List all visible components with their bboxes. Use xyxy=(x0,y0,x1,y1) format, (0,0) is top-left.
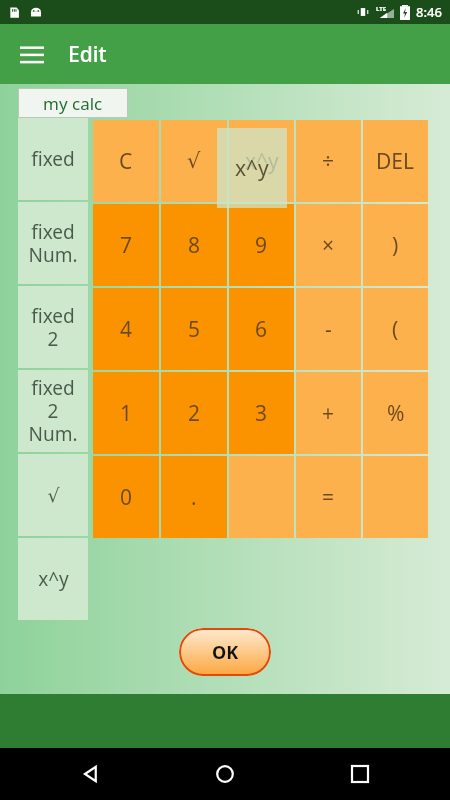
staticText: 8:46 xyxy=(416,3,442,21)
staticText: 3 xyxy=(255,399,268,428)
button[interactable]: + xyxy=(296,372,361,454)
staticText: fixed 2 Num. xyxy=(28,375,78,447)
button[interactable]: - xyxy=(296,288,361,370)
button[interactable]: 5 xyxy=(161,288,227,370)
button[interactable]: ÷ xyxy=(296,120,361,202)
staticText: DEL xyxy=(376,147,415,176)
staticText: % xyxy=(387,399,405,428)
button[interactable]: = xyxy=(296,456,361,538)
staticText: my calc xyxy=(43,92,103,115)
staticText: + xyxy=(322,399,335,428)
staticText: 5 xyxy=(188,315,201,344)
button[interactable]: √ xyxy=(161,120,227,202)
button[interactable]: x^y xyxy=(229,120,294,202)
button[interactable]: DEL xyxy=(363,120,428,202)
button[interactable]: ) xyxy=(363,204,428,286)
button[interactable]: Home xyxy=(205,754,245,794)
button[interactable]: 9 xyxy=(229,204,294,286)
staticText: - xyxy=(325,315,332,344)
button[interactable]: C xyxy=(93,120,159,202)
button[interactable]: Recents xyxy=(340,754,380,794)
button[interactable]: 8 xyxy=(161,204,227,286)
button[interactable]: Menu xyxy=(10,32,54,76)
button[interactable]: 7 xyxy=(93,204,159,286)
button[interactable]: fixed 2 xyxy=(18,286,88,368)
staticText: 8 xyxy=(188,231,201,260)
staticText: . xyxy=(191,483,197,512)
staticText: x^y xyxy=(235,154,269,183)
button[interactable]: . xyxy=(161,456,227,538)
button[interactable]: √ xyxy=(18,454,88,536)
staticText: √ xyxy=(187,149,201,173)
staticText: × xyxy=(322,231,335,260)
staticText: 7 xyxy=(120,231,133,260)
button[interactable]: × xyxy=(296,204,361,286)
staticText: 6 xyxy=(255,315,268,344)
button[interactable]: fixed xyxy=(18,118,88,200)
button[interactable]: 0 xyxy=(93,456,159,538)
staticText: fixed Num. xyxy=(28,219,78,268)
button[interactable]: x^y xyxy=(18,538,88,620)
button[interactable]: 1 xyxy=(93,372,159,454)
button[interactable]: 3 xyxy=(229,372,294,454)
staticText: 1 xyxy=(120,399,133,428)
staticText: ÷ xyxy=(322,147,335,176)
staticText: √ xyxy=(47,484,60,506)
button[interactable]: OK xyxy=(179,628,271,676)
staticText: LTE xyxy=(376,5,387,13)
staticText: 0 xyxy=(120,483,133,512)
button[interactable]: Back xyxy=(70,754,110,794)
staticText: fixed xyxy=(31,146,75,172)
staticText: ) xyxy=(392,231,399,260)
button[interactable]: % xyxy=(363,372,428,454)
button[interactable]: 6 xyxy=(229,288,294,370)
button[interactable]: fixed 2 Num. xyxy=(18,370,88,452)
staticText: fixed 2 xyxy=(31,303,75,352)
staticText: Edit xyxy=(68,40,107,69)
staticText: C xyxy=(119,147,133,176)
staticText: OK xyxy=(212,640,239,665)
staticText: = xyxy=(322,483,335,512)
staticText: 9 xyxy=(255,231,268,260)
button[interactable]: fixed Num. xyxy=(18,202,88,284)
staticText: x^y xyxy=(245,147,279,176)
staticText: 4 xyxy=(120,315,133,344)
staticText: ( xyxy=(392,315,399,344)
staticText: 2 xyxy=(188,399,201,428)
button[interactable]: ( xyxy=(363,288,428,370)
staticText: x^y xyxy=(38,566,69,592)
button[interactable]: my calc xyxy=(18,88,128,118)
button[interactable]: 4 xyxy=(93,288,159,370)
button[interactable]: 2 xyxy=(161,372,227,454)
